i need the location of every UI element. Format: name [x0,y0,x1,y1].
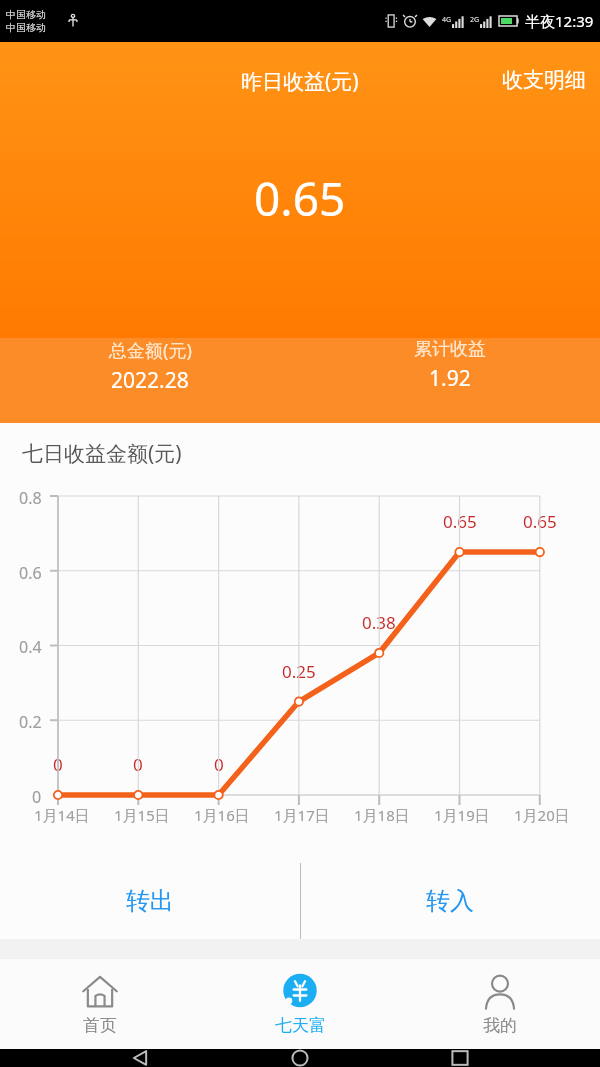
button[interactable]: 转入 [300,863,600,939]
staticText: 我的 [483,1015,517,1036]
staticText: 0.2 [19,711,42,733]
staticText: 累计收益 [414,338,486,361]
staticText: 1.92 [429,364,471,393]
staticText: 4G [442,15,452,25]
staticText: 1月19日 [434,805,490,825]
button[interactable]: 总金额(元) [0,338,300,395]
staticText: 收支明细 [502,67,586,93]
button[interactable]: Back [120,1049,160,1067]
staticText: 1月14日 [34,805,90,825]
button[interactable]: 转出 [0,863,300,939]
staticText: 0 [133,753,143,776]
staticText: 0 [214,753,224,776]
button[interactable]: 首页 [0,959,200,1049]
staticText: 2G [470,15,480,25]
staticText: 0.65 [443,510,477,533]
staticText: 昨日收益(元) [241,67,359,96]
staticText: 0.65 [254,167,346,230]
staticText: 2022.28 [111,366,189,395]
button[interactable]: 昨日收益(元) [241,67,359,96]
staticText: 1月20日 [514,805,570,825]
staticText: 1月15日 [114,805,170,825]
button[interactable]: 收支明细 [502,67,586,93]
staticText: 中国移动 [6,21,46,34]
staticText: 中国移动 [6,8,46,21]
staticText: 0 [53,753,63,776]
staticText: 1月16日 [194,805,250,825]
button[interactable]: Home [280,1049,320,1067]
staticText: 0.6 [19,562,42,584]
staticText: 0.4 [19,636,42,658]
button[interactable]: 七天富 [200,959,400,1049]
staticText: 0.8 [19,487,42,509]
staticText: 0.25 [282,660,316,683]
staticText: 七日收益金额(元) [22,439,182,468]
staticText: 总金额(元) [109,338,192,363]
staticText: 转入 [426,886,474,916]
button[interactable]: Recent apps [440,1049,480,1067]
staticText: 0 [32,786,42,808]
staticText: 0.65 [523,510,557,533]
button[interactable]: 我的 [400,959,600,1049]
button[interactable]: 累计收益 [300,338,600,393]
staticText: 半夜12:39 [525,11,594,31]
staticText: 首页 [83,1015,117,1036]
staticText: 1月18日 [354,805,410,825]
staticText: 1月17日 [274,805,330,825]
staticText: 0.38 [362,611,396,634]
staticText: 七天富 [275,1015,326,1036]
staticText: 转出 [126,886,174,916]
